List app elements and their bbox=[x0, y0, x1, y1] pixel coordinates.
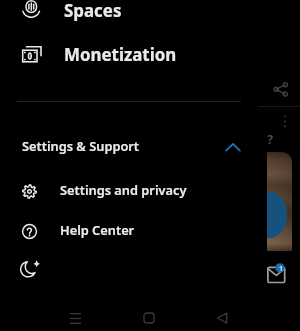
button[interactable]: Home bbox=[127, 296, 171, 331]
staticText: ? bbox=[267, 130, 274, 148]
button[interactable]: Back bbox=[200, 296, 244, 331]
staticText: Settings & Support bbox=[22, 137, 140, 154]
button[interactable]: Help Center bbox=[0, 212, 258, 250]
staticText: Help Center bbox=[60, 221, 135, 238]
button[interactable]: Monetization bbox=[0, 31, 258, 75]
button[interactable]: Share bbox=[272, 80, 290, 98]
button[interactable]: Messages bbox=[264, 258, 296, 290]
button[interactable]: Settings and privacy bbox=[0, 172, 258, 210]
button[interactable]: Spaces bbox=[0, 0, 258, 31]
staticText: Spaces bbox=[64, 0, 122, 22]
staticText: Monetization bbox=[64, 43, 177, 66]
button[interactable]: Settings & Support bbox=[0, 127, 258, 167]
staticText: Settings and privacy bbox=[60, 181, 187, 198]
button[interactable]: Photo bbox=[267, 152, 292, 251]
button[interactable]: Dark mode bbox=[0, 249, 258, 287]
button[interactable]: More options bbox=[279, 112, 293, 126]
staticText: 1 bbox=[279, 264, 284, 274]
button[interactable]: Recent apps bbox=[53, 296, 97, 331]
